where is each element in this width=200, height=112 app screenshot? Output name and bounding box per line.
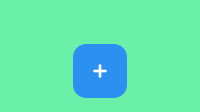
button[interactable]: Add — [73, 44, 127, 98]
